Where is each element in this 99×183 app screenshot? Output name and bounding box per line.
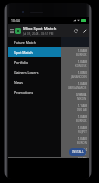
staticText: 1.0458 [78,126,87,130]
staticText: Mixx Spot Match [23,26,57,32]
button[interactable]: 0.98584 [8,91,89,102]
staticText: Portfolio [14,60,29,65]
staticText: INSTALL [72,150,84,154]
button[interactable]: 1.0050 [8,69,89,80]
staticText: NIKON [77,97,87,101]
staticText: 10:34 [11,18,20,23]
button[interactable]: 1.1458 [8,102,89,113]
staticText: 0.0485 [78,157,87,158]
button[interactable]: Gainers Losers [8,67,61,77]
button[interactable]: Open navigation drawer [8,24,15,37]
staticText: 1.1458 [78,104,87,108]
button[interactable]: 1.0450 [8,135,89,146]
button[interactable]: Edit [80,24,89,37]
button[interactable]: 0.1484 [8,146,89,157]
staticText: Jul 05, 2048 - 03:51 PM [23,32,54,36]
staticText: 1.0458 [78,49,87,53]
staticText: 1.0458 [78,60,87,64]
staticText: KONOSX [75,64,87,68]
button[interactable]: Spot Match [8,47,61,57]
button[interactable]: Future Match [8,37,61,47]
staticText: Promotions [14,90,34,95]
staticText: 0.98584 [76,93,87,97]
staticText: RUJPIT [78,130,87,134]
button[interactable]: 1.0458 [8,113,89,124]
staticText: Gainers Losers [14,70,39,75]
staticText: ISKI AB [77,108,87,112]
staticText: Future Match [14,40,36,45]
staticText: VARGANAROS [68,86,87,90]
staticText: ANKOSANI [72,152,87,156]
staticText: 1.0458 [78,115,87,119]
staticText: 1.0450 [78,137,87,141]
button[interactable]: Promotions [8,87,61,97]
button[interactable]: 1.0458 [8,124,89,135]
button[interactable]: Refresh [71,24,80,37]
button[interactable]: 1.0458 [8,47,89,58]
staticText: 0.1484 [78,148,87,152]
staticText: JANANCOIN [71,75,87,79]
staticText: BURON [77,141,87,145]
staticText: BURNIX [76,119,87,123]
button[interactable]: 1.0458 [8,58,89,69]
staticText: Spot Match [14,50,33,55]
staticText: 1.0458 [78,82,87,86]
button[interactable]: INSTALL [69,148,86,156]
staticText: 1.0050 [78,71,87,75]
button[interactable]: News [8,77,61,87]
button[interactable]: 0.0485 [8,157,89,158]
staticText: News [14,80,23,85]
button[interactable]: Portfolio [8,57,61,67]
button[interactable]: 1.0458 [8,80,89,91]
staticText: BURNIX [76,53,87,57]
